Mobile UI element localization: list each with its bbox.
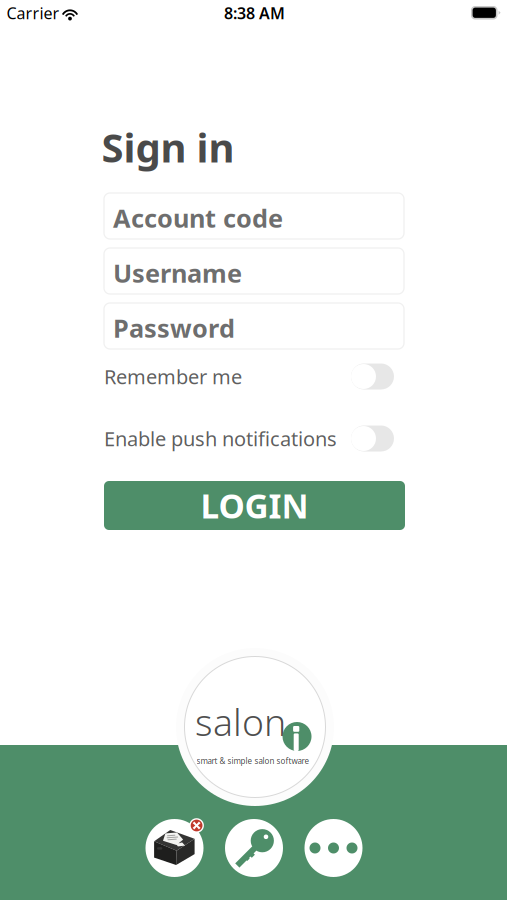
staticText: Remember me bbox=[104, 363, 242, 390]
button[interactable]: More options bbox=[304, 819, 362, 877]
button[interactable]: Printer status bbox=[145, 819, 203, 877]
staticText: Sign in bbox=[101, 120, 234, 173]
button[interactable]: Password bbox=[104, 303, 404, 349]
button[interactable]: Username bbox=[104, 248, 404, 294]
staticText: Username bbox=[113, 256, 242, 290]
staticText: 8:38 AM bbox=[224, 2, 285, 24]
staticText: Carrier bbox=[6, 2, 59, 24]
staticText: LOGIN bbox=[200, 483, 308, 528]
staticText: Password bbox=[113, 311, 235, 345]
staticText: Account code bbox=[113, 201, 283, 235]
button[interactable]: Enable push notifications bbox=[104, 423, 394, 453]
staticText: smart & simple salon software bbox=[196, 756, 309, 766]
button[interactable]: Account code bbox=[104, 193, 404, 239]
button[interactable]: Licence key bbox=[225, 819, 283, 877]
staticText: salon bbox=[195, 697, 286, 746]
button[interactable]: Remember me bbox=[104, 361, 394, 391]
button[interactable]: LOGIN bbox=[104, 481, 405, 530]
staticText: Enable push notifications bbox=[104, 425, 337, 452]
